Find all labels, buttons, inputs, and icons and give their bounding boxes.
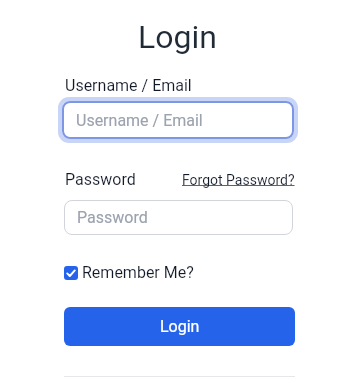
staticText: Password	[65, 170, 136, 189]
button[interactable]: Forgot Password?	[182, 172, 295, 188]
button[interactable]: Username / Email	[62, 101, 294, 139]
staticText: Username / Email	[76, 111, 203, 130]
staticText: Login	[138, 18, 217, 56]
staticText: Login	[160, 317, 200, 336]
staticText: Username / Email	[65, 76, 192, 95]
button[interactable]: Login	[64, 307, 295, 346]
button[interactable]: Remember Me?	[64, 263, 214, 280]
button[interactable]: Password	[64, 200, 293, 235]
staticText: Remember Me?	[82, 263, 194, 280]
staticText: Password	[77, 208, 148, 227]
